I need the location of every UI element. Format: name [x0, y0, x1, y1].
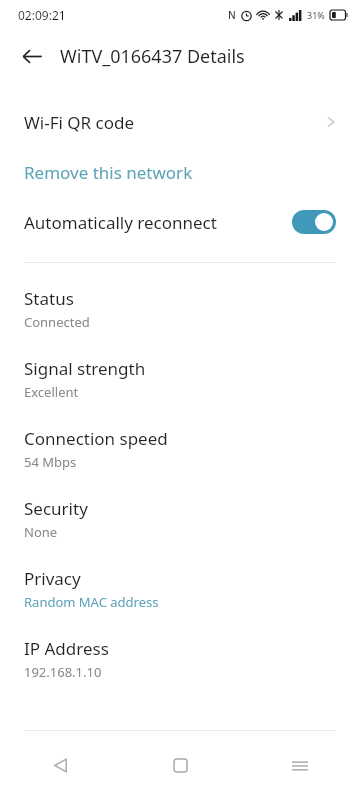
- staticText: None: [24, 523, 58, 541]
- button[interactable]: Recent apps: [240, 731, 360, 800]
- staticText: Excellent: [24, 383, 79, 401]
- staticText: Wi-Fi QR code: [24, 111, 135, 134]
- staticText: Remove this network: [24, 161, 193, 184]
- button[interactable]: Remove this network: [0, 152, 360, 192]
- button[interactable]: Privacy: [0, 567, 360, 611]
- button[interactable]: Signal strength: [0, 357, 360, 401]
- button[interactable]: Back: [0, 731, 120, 800]
- staticText: Random MAC address: [24, 593, 159, 611]
- staticText: Privacy: [24, 567, 81, 590]
- staticText: Signal strength: [24, 357, 146, 380]
- button[interactable]: IP Address: [0, 637, 360, 681]
- staticText: Connection speed: [24, 427, 168, 450]
- staticText: Automatically reconnect: [24, 211, 217, 234]
- button[interactable]: Automatically reconnect: [0, 200, 360, 244]
- staticText: WiTV_0166437 Details: [60, 44, 245, 69]
- button[interactable]: Connection speed: [0, 427, 360, 471]
- staticText: 54 Mbps: [24, 453, 77, 471]
- button[interactable]: Home: [120, 731, 240, 800]
- staticText: Security: [24, 497, 88, 520]
- staticText: Status: [24, 287, 74, 310]
- staticText: N: [228, 8, 236, 22]
- staticText: Connected: [24, 313, 90, 331]
- staticText: IP Address: [24, 637, 109, 660]
- staticText: 192.168.1.10: [24, 663, 102, 681]
- button[interactable]: Status: [0, 287, 360, 331]
- button[interactable]: Wi-Fi QR code: [0, 100, 360, 144]
- staticText: 02:09:21: [18, 7, 66, 23]
- staticText: 31%: [307, 9, 325, 21]
- button[interactable]: Back: [12, 36, 52, 76]
- button[interactable]: Automatically reconnect toggle: [292, 210, 336, 234]
- button[interactable]: Security: [0, 497, 360, 541]
